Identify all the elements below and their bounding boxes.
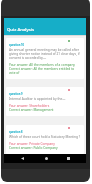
staticText: Which of these court hold a Statutory Me… [9, 135, 81, 139]
staticText: Your answer: All the members of a compan… [9, 63, 75, 67]
staticText: question 8 [9, 130, 23, 134]
button[interactable]: question 9 [6, 87, 84, 116]
staticText: Quiz Analysis [7, 26, 35, 32]
staticText: Correct answer: Public Company [9, 146, 58, 150]
button[interactable]: Quiz Analysis [4, 18, 86, 35]
staticText: Your answer: Private Company [9, 142, 55, 146]
staticText: question 10 [9, 43, 25, 47]
button[interactable]: question 8 [6, 125, 84, 154]
staticText: Internal Auditor is appointed by the— [9, 97, 66, 101]
button[interactable]: question 10 [6, 38, 84, 79]
button[interactable]: Home [45, 157, 48, 160]
button[interactable]: Back [21, 157, 24, 160]
staticText: An annual general meeting may be called … [9, 48, 81, 60]
staticText: question 9 [9, 92, 23, 96]
staticText: Your answer: Shareholders [9, 104, 50, 108]
staticText: Correct answer: Management [9, 108, 54, 112]
staticText: Correct answer: All the members entitled… [9, 67, 81, 75]
